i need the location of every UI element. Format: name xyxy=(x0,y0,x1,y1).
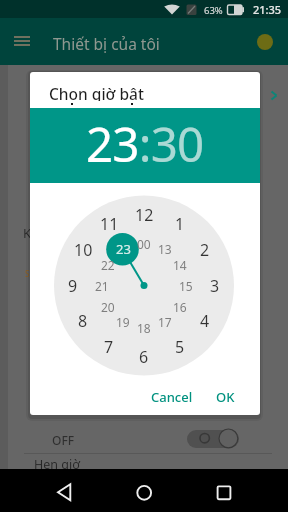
staticText: 20 xyxy=(101,299,115,315)
staticText: 2 xyxy=(200,239,210,261)
staticText: 3 xyxy=(210,275,220,297)
button[interactable]: Cancel xyxy=(150,385,194,409)
staticText: 14 xyxy=(173,257,187,273)
staticText: OFF xyxy=(52,432,75,448)
button[interactable] xyxy=(0,469,96,512)
staticText: S xyxy=(25,268,30,279)
staticText: 23:30 xyxy=(86,111,204,176)
staticText: 8 xyxy=(78,310,88,332)
staticText: Cancel xyxy=(151,388,193,406)
staticText: 21 xyxy=(95,278,109,294)
staticText: 4 xyxy=(200,310,210,332)
staticText: 23 xyxy=(116,240,131,258)
staticText: Hẹn giờ xyxy=(34,456,80,473)
staticText: 5 xyxy=(175,336,185,358)
button[interactable]: OK xyxy=(206,385,244,409)
staticText: Thiết bị của tôi xyxy=(53,33,160,54)
button[interactable] xyxy=(6,25,38,57)
staticText: 63% xyxy=(204,4,223,17)
staticText: 11 xyxy=(100,213,119,235)
staticText: 6 xyxy=(139,346,149,368)
staticText: 12 xyxy=(135,204,154,226)
staticText: 13 xyxy=(158,241,172,257)
button[interactable] xyxy=(257,34,273,50)
staticText: 22 xyxy=(101,257,115,273)
staticText: OK xyxy=(216,388,235,406)
button[interactable] xyxy=(96,469,192,512)
staticText: 18 xyxy=(137,320,151,336)
staticText: Chọn giờ bật xyxy=(49,83,144,101)
staticText: 9 xyxy=(68,275,78,297)
staticText: 19 xyxy=(116,314,130,330)
staticText: 7 xyxy=(104,336,114,358)
staticText: 00 xyxy=(137,236,151,252)
staticText: 16 xyxy=(173,299,187,315)
staticText: 1 xyxy=(175,213,185,235)
staticText: 15 xyxy=(179,278,193,294)
staticText: K xyxy=(23,224,32,242)
staticText: 10 xyxy=(74,239,93,261)
button[interactable] xyxy=(187,430,239,448)
staticText: 17 xyxy=(158,314,172,330)
button[interactable] xyxy=(192,469,288,512)
staticText: 21:35 xyxy=(253,2,282,17)
